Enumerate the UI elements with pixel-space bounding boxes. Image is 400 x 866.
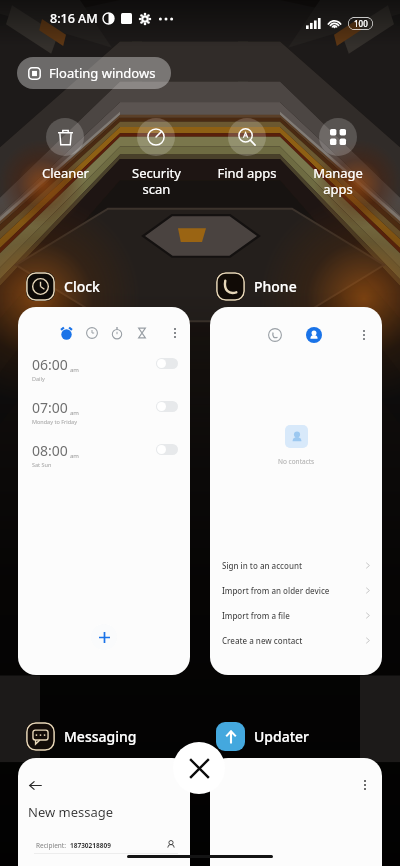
- button[interactable]: Alarm: [53, 320, 79, 346]
- button[interactable]: World clock: [79, 320, 105, 346]
- staticText: Import from a file: [222, 610, 290, 621]
- button[interactable]: Close all apps: [173, 742, 225, 794]
- button[interactable]: Sign in to an account: [222, 553, 371, 578]
- staticText: Floating windows: [49, 64, 156, 82]
- button[interactable]: Phone: [216, 272, 297, 301]
- button[interactable]: Import from an older device: [222, 578, 371, 603]
- button[interactable]: More options: [162, 320, 188, 346]
- button[interactable]: Clock: [26, 272, 100, 301]
- staticText: Updater: [254, 727, 310, 746]
- button[interactable]: 08:00: [32, 441, 178, 469]
- button[interactable]: Manage apps: [300, 118, 376, 197]
- staticText: New message: [28, 803, 114, 821]
- button[interactable]: Updater: [216, 722, 310, 751]
- staticText: Find apps: [217, 164, 277, 182]
- button[interactable]: Messaging: [26, 722, 137, 751]
- staticText: Create a new contact: [222, 635, 303, 646]
- button[interactable]: Toggle alarm: [156, 401, 178, 412]
- button[interactable]: Recent calls: [210, 307, 382, 675]
- staticText: Sat Sun: [32, 461, 52, 468]
- staticText: am: [70, 452, 79, 460]
- staticText: Phone: [254, 277, 297, 296]
- button[interactable]: Floating windows: [17, 57, 171, 89]
- button[interactable]: Recent calls: [262, 322, 288, 348]
- button[interactable]: Stopwatch: [104, 320, 130, 346]
- button[interactable]: Back: [18, 758, 190, 866]
- staticText: 06:00: [32, 355, 68, 374]
- button[interactable]: More options: [210, 758, 382, 866]
- staticText: 100: [354, 18, 368, 29]
- staticText: Cleaner: [42, 164, 89, 182]
- button[interactable]: Back: [26, 776, 44, 794]
- button[interactable]: 07:00: [32, 398, 178, 426]
- staticText: Daily: [32, 375, 45, 382]
- staticText: Sign in to an account: [222, 560, 302, 571]
- staticText: Messaging: [64, 727, 137, 746]
- button[interactable]: 06:00: [32, 355, 178, 383]
- staticText: am: [70, 366, 79, 374]
- staticText: Import from an older device: [222, 585, 330, 596]
- button[interactable]: Alarm: [18, 307, 190, 675]
- staticText: 08:00: [32, 441, 68, 460]
- button[interactable]: More options: [356, 776, 374, 794]
- button[interactable]: Cleaner: [27, 118, 103, 182]
- staticText: 8:16 AM: [50, 10, 98, 27]
- button[interactable]: Import from a file: [222, 603, 371, 628]
- staticText: Security scan: [132, 164, 181, 197]
- button[interactable]: Toggle alarm: [156, 444, 178, 455]
- staticText: Recipient:: [36, 841, 66, 850]
- button[interactable]: Toggle alarm: [156, 358, 178, 369]
- staticText: 18730218809: [70, 841, 111, 850]
- staticText: Monday to Friday: [32, 418, 77, 425]
- button[interactable]: Contacts: [301, 322, 327, 348]
- button[interactable]: Create a new contact: [222, 628, 371, 653]
- staticText: 07:00: [32, 398, 68, 417]
- staticText: am: [70, 409, 79, 417]
- staticText: Clock: [64, 277, 100, 296]
- button[interactable]: More options: [351, 322, 377, 348]
- button[interactable]: Find apps: [209, 118, 285, 182]
- staticText: Manage apps: [313, 164, 363, 197]
- button[interactable]: Add alarm: [91, 624, 117, 650]
- button[interactable]: Security scan: [118, 118, 194, 197]
- staticText: No contacts: [278, 457, 315, 466]
- button[interactable]: Timer: [129, 320, 155, 346]
